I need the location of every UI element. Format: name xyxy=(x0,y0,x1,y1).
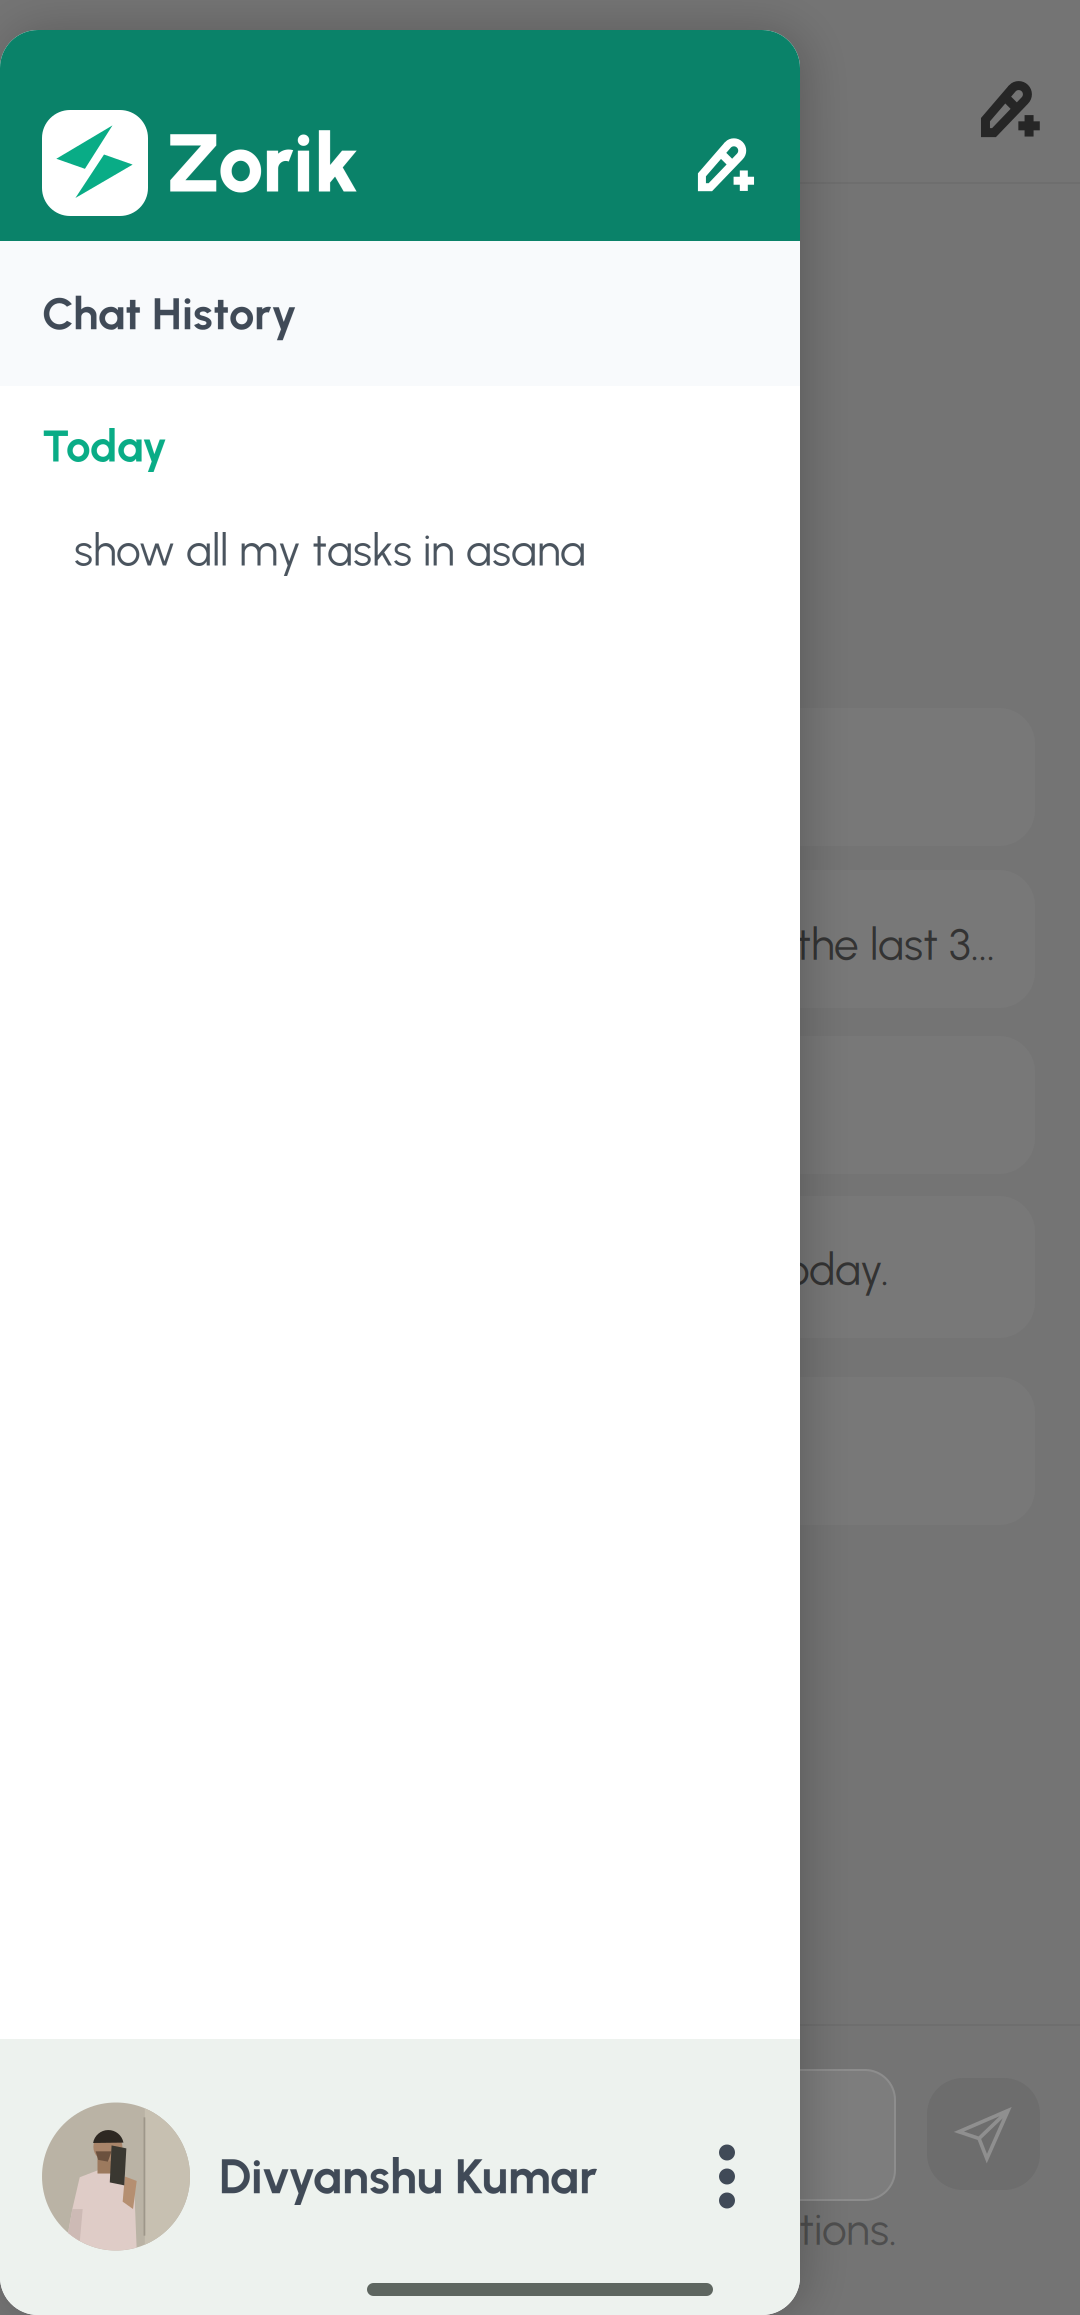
staticText: n the last 3... xyxy=(761,918,995,971)
staticText: show all my tasks in asana xyxy=(74,524,586,576)
button[interactable]: New chat xyxy=(680,115,776,211)
button[interactable]: Divyanshu Kumar xyxy=(0,2039,800,2314)
staticText: Chat History xyxy=(42,286,297,341)
button[interactable]: show all my tasks in asana xyxy=(0,506,800,594)
staticText: actions. xyxy=(752,2203,897,2256)
staticText: Divyanshu Kumar xyxy=(219,2148,597,2205)
staticText: Today xyxy=(42,420,167,472)
staticText: oday. xyxy=(785,1243,889,1296)
staticText: Zorik xyxy=(167,114,359,212)
